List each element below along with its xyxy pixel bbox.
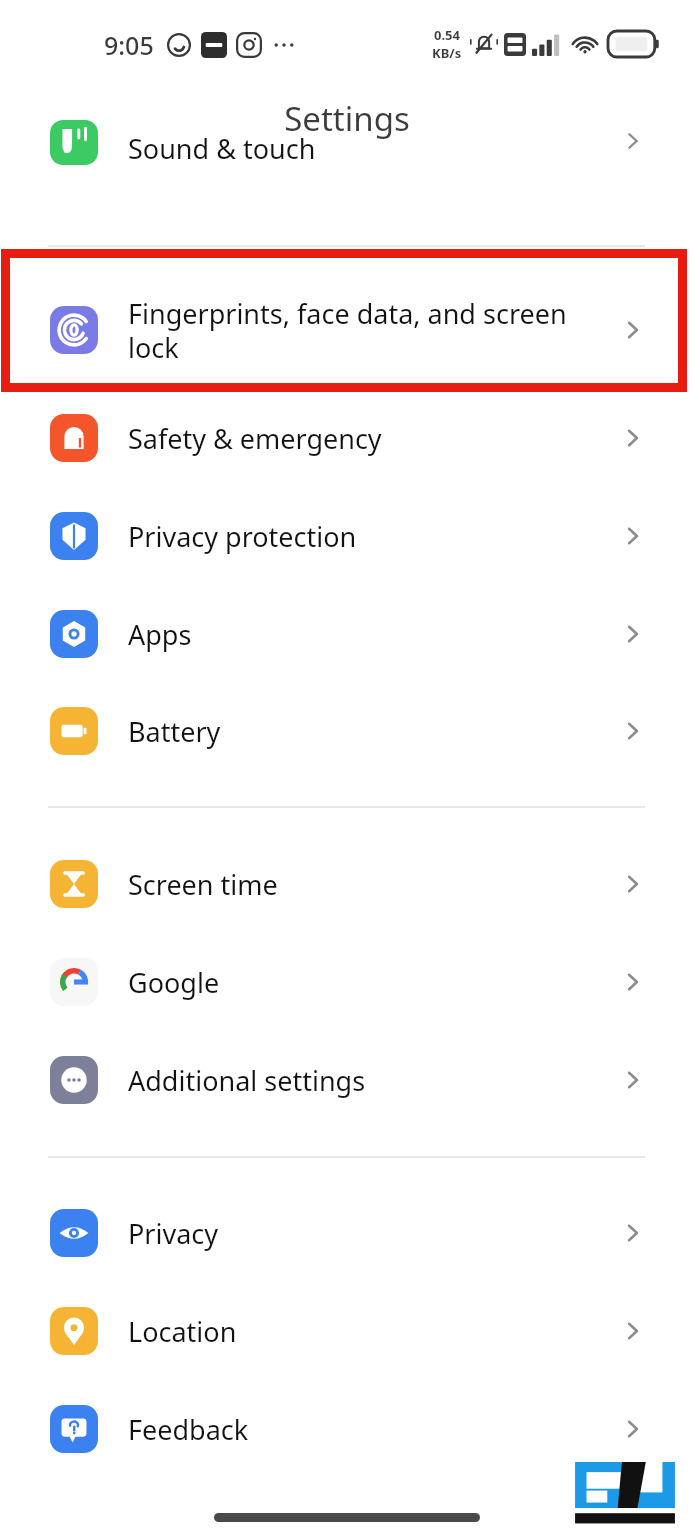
staticText: Google bbox=[128, 964, 220, 1001]
staticText: Privacy bbox=[128, 1215, 219, 1252]
button[interactable]: Privacy protection bbox=[0, 487, 693, 585]
button[interactable]: Google bbox=[0, 933, 693, 1031]
staticText: Battery bbox=[128, 713, 221, 750]
staticText: Additional settings bbox=[128, 1062, 366, 1099]
staticText: Fingerprints, face data, and screen lock bbox=[128, 295, 568, 366]
staticText: 0.54 bbox=[434, 26, 460, 44]
button[interactable]: Privacy bbox=[0, 1184, 693, 1282]
staticText: Feedback bbox=[128, 1411, 249, 1448]
staticText: Settings bbox=[284, 96, 410, 141]
button[interactable]: Apps bbox=[0, 585, 693, 683]
staticText: Sound & touch bbox=[128, 130, 316, 167]
button[interactable]: Location bbox=[0, 1282, 693, 1380]
button[interactable]: Screen time bbox=[0, 835, 693, 933]
button[interactable]: Safety & emergency bbox=[0, 389, 693, 487]
staticText: Privacy protection bbox=[128, 518, 357, 555]
staticText: 9:05 bbox=[104, 28, 154, 62]
button[interactable]: Feedback bbox=[0, 1380, 693, 1478]
staticText: Screen time bbox=[128, 866, 278, 903]
staticText: KB/s bbox=[432, 44, 462, 62]
staticText: Safety & emergency bbox=[128, 420, 382, 457]
button[interactable]: Sound & touch bbox=[0, 150, 693, 195]
staticText: Location bbox=[128, 1313, 237, 1350]
button[interactable]: Battery bbox=[0, 682, 693, 780]
staticText: Apps bbox=[128, 616, 192, 653]
button[interactable]: Fingerprints, face data, and screen lock bbox=[0, 281, 693, 379]
button[interactable]: Additional settings bbox=[0, 1031, 693, 1129]
